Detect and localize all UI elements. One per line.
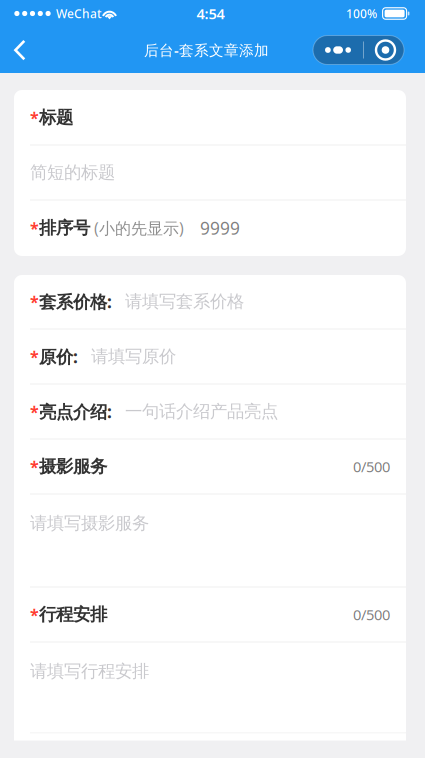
staticText: 一句话介绍产品亮点 — [125, 401, 278, 422]
staticText: 原价: — [39, 345, 78, 368]
staticText: 100% — [346, 5, 377, 21]
button[interactable]: More options — [313, 35, 404, 64]
staticText: 0/500 — [353, 605, 390, 624]
staticText: 请填写行程安排 — [30, 660, 149, 682]
staticText: 请填写套系价格 — [125, 291, 244, 312]
button[interactable]: * — [14, 439, 406, 493]
staticText: 0/500 — [353, 457, 390, 476]
staticText: * — [30, 456, 39, 477]
button[interactable]: * — [14, 274, 406, 328]
button[interactable]: * — [14, 329, 406, 383]
staticText: 摄影服务 — [39, 456, 107, 477]
button[interactable]: 请填写行程安排 — [14, 642, 406, 732]
button[interactable]: * — [14, 200, 406, 255]
button[interactable]: Back — [0, 27, 40, 73]
staticText: * — [30, 291, 39, 312]
button[interactable]: * — [14, 90, 406, 144]
staticText: 排序号 — [39, 217, 90, 239]
staticText: 标题 — [39, 107, 73, 128]
staticText: (小的先显示) — [94, 217, 184, 239]
staticText: * — [30, 217, 39, 239]
button[interactable]: * — [14, 384, 406, 438]
staticText: * — [30, 107, 39, 128]
staticText: 请填写原价 — [91, 346, 176, 367]
staticText: * — [30, 401, 39, 422]
button[interactable]: 简短的标题 — [14, 145, 406, 199]
staticText: 请填写摄影服务 — [30, 512, 149, 534]
staticText: 后台-套系文章添加 — [144, 40, 269, 60]
button[interactable]: 请填写摄影服务 — [14, 494, 406, 586]
staticText: 9999 — [200, 216, 240, 239]
staticText: * — [30, 346, 39, 367]
staticText: 行程安排 — [39, 604, 107, 625]
staticText: WeChat — [56, 5, 102, 21]
staticText: 套系价格: — [39, 290, 112, 313]
staticText: 4:54 — [196, 4, 224, 23]
button[interactable]: * — [14, 587, 406, 641]
staticText: * — [30, 604, 39, 625]
staticText: 亮点介绍: — [39, 400, 112, 423]
staticText: 简短的标题 — [30, 162, 115, 183]
